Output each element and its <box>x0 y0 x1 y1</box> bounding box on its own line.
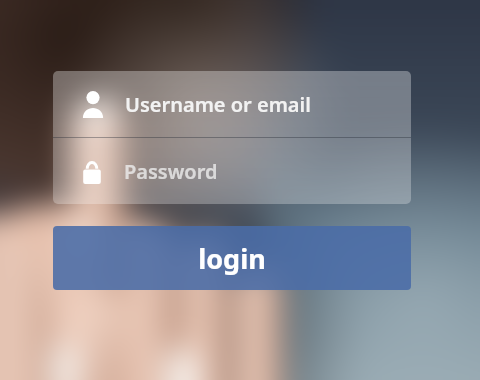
button[interactable]: Username or email <box>53 71 411 137</box>
button[interactable]: Password <box>53 138 411 204</box>
staticText: Username or email <box>125 91 311 118</box>
staticText: login <box>198 240 266 277</box>
button[interactable]: login <box>53 226 411 290</box>
staticText: Password <box>124 158 218 185</box>
